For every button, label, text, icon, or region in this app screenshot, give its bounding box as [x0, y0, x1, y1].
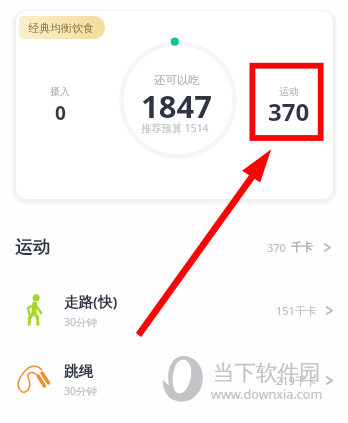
button[interactable]: 经典均衡饮食 — [19, 16, 105, 39]
staticText: 还可以吃 — [154, 73, 200, 87]
staticText: 30分钟 — [64, 315, 98, 329]
staticText: 370 — [267, 240, 286, 255]
button[interactable]: 跳绳 — [0, 355, 348, 405]
staticText: 30分钟 — [64, 384, 98, 398]
button[interactable]: 运动 — [0, 228, 348, 266]
staticText: 推荐预算 1514 — [141, 121, 209, 135]
staticText: 经典均衡饮食 — [28, 21, 94, 35]
staticText: 219千卡 — [276, 373, 317, 388]
staticText: 摄入 — [50, 85, 70, 98]
staticText: 跳绳 — [64, 362, 93, 380]
staticText: 千卡 — [291, 240, 313, 254]
button[interactable]: 走路(快) — [0, 285, 348, 335]
staticText: 151千卡 — [276, 303, 317, 318]
staticText: 370 — [268, 95, 310, 128]
staticText: 运动 — [279, 85, 299, 98]
staticText: 0 — [55, 100, 66, 126]
staticText: www.downxia.com — [211, 386, 323, 403]
staticText: 走路(快) — [64, 291, 118, 311]
staticText: 当下软件园 — [213, 359, 321, 386]
staticText: 运动 — [15, 236, 50, 258]
staticText: 1847 — [141, 85, 212, 127]
